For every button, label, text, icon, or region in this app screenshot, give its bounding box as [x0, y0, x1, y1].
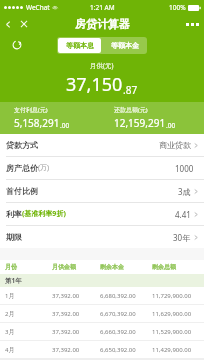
staticText: 6,650,392.00: [100, 346, 136, 354]
staticText: 月份: [5, 263, 17, 271]
staticText: 6,680,392.00: [100, 292, 136, 300]
button[interactable]: Back: [0, 16, 16, 32]
staticText: .00: [60, 121, 70, 130]
staticText: 房产总价: [6, 163, 38, 173]
staticText: 还款总额(元): [114, 106, 148, 114]
staticText: 支付利息(元): [14, 106, 48, 114]
button[interactable]: More options: [185, 23, 200, 26]
button[interactable]: 等额本息: [58, 38, 101, 53]
staticText: 37,150: [66, 72, 123, 97]
staticText: 1000: [175, 163, 194, 174]
button[interactable]: 3月: [0, 323, 204, 341]
staticText: 100%: [169, 3, 186, 12]
staticText: 12,159,291: [114, 116, 166, 130]
button[interactable]: 房产总价: [0, 157, 204, 179]
staticText: 等额本金: [111, 41, 139, 50]
staticText: 期限: [6, 232, 22, 242]
staticText: 月供(元): [90, 61, 114, 70]
staticText: 利率: [6, 209, 22, 219]
staticText: 37,392.00: [52, 328, 80, 336]
staticText: WeChat: [26, 3, 50, 12]
staticText: .00: [166, 121, 176, 130]
staticText: 6,660,392.00: [100, 328, 136, 336]
button[interactable]: 等额本金: [102, 37, 147, 54]
staticText: 4月: [5, 346, 15, 354]
staticText: 4.41: [175, 209, 191, 220]
staticText: 6,670,392.00: [100, 310, 136, 318]
button[interactable]: Reset: [10, 38, 24, 52]
staticText: 月供金额: [52, 263, 76, 271]
staticText: (万): [38, 163, 50, 173]
staticText: 37,392.00: [52, 310, 80, 318]
staticText: 等额本息: [66, 41, 94, 50]
staticText: 37,392.00: [52, 346, 80, 354]
staticText: 第1年: [5, 276, 22, 285]
button[interactable]: 2月: [0, 305, 204, 323]
staticText: 11,629,900.00: [152, 310, 192, 318]
staticText: 贷款方式: [6, 140, 38, 150]
staticText: 1月: [5, 292, 15, 300]
staticText: 剩余本金: [100, 263, 124, 271]
staticText: 3成: [178, 186, 191, 197]
button[interactable]: 贷款方式: [0, 134, 204, 156]
staticText: 30年: [173, 232, 191, 243]
button[interactable]: 首付比例: [0, 180, 204, 202]
staticText: 11,529,900.00: [152, 328, 192, 336]
staticText: (基准利率9折): [22, 209, 66, 219]
button[interactable]: Close: [16, 16, 32, 32]
staticText: 房贷计算器: [75, 17, 130, 31]
button[interactable]: 4月: [0, 341, 204, 359]
staticText: 1:21 AM: [90, 3, 115, 12]
staticText: 2月: [5, 310, 15, 318]
staticText: 11,729,900.00: [152, 292, 192, 300]
button[interactable]: 期限: [0, 226, 204, 248]
button[interactable]: 利率: [0, 203, 204, 225]
staticText: .87: [123, 83, 138, 97]
staticText: 首付比例: [6, 186, 38, 196]
staticText: 商业贷款: [159, 140, 191, 150]
staticText: 剩余总额: [152, 263, 176, 271]
staticText: 5,158,291: [14, 116, 60, 130]
button[interactable]: 1月: [0, 287, 204, 305]
staticText: 37,392.00: [52, 292, 80, 300]
staticText: 11,429,900.00: [152, 346, 192, 354]
staticText: 3月: [5, 328, 15, 336]
